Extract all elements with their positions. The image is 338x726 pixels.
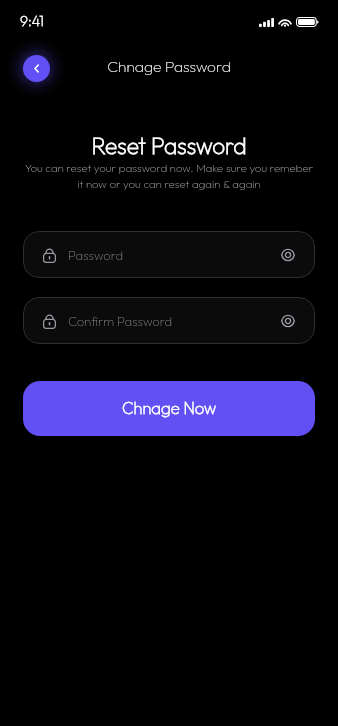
button[interactable]: Chnage Now: [23, 381, 315, 436]
staticText: 9:41: [20, 12, 44, 30]
button[interactable]: Show password: [276, 243, 300, 267]
staticText: You can reset your password now. Make su…: [10, 161, 328, 191]
button[interactable]: Back: [23, 55, 50, 82]
staticText: Reset Password: [0, 131, 338, 159]
button[interactable]: Password: [23, 231, 315, 278]
staticText: Password: [68, 247, 124, 263]
staticText: Chnage Password: [0, 56, 338, 76]
staticText: Chnage Now: [122, 397, 217, 418]
button[interactable]: Show password: [276, 309, 300, 333]
button[interactable]: Confirm Password: [23, 297, 315, 344]
staticText: Confirm Password: [68, 313, 173, 329]
